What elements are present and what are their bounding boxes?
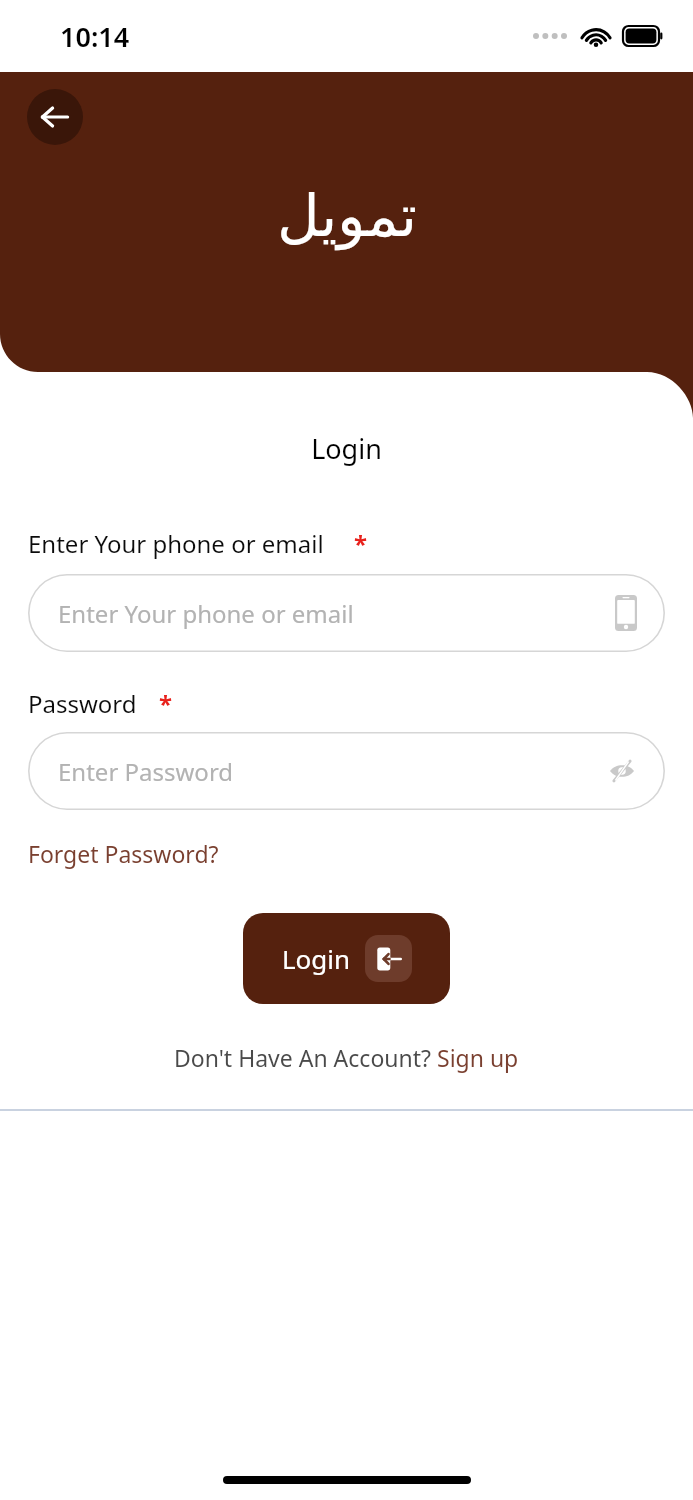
button[interactable]: Enter Password [28,732,665,810]
button[interactable]: Login [243,913,450,1004]
other: Phone [615,595,637,631]
button[interactable]: Don't Have An Account? Sign up [168,1036,525,1079]
staticText: تمویل [277,182,417,250]
staticText: Forget Password? [28,838,219,869]
other: Show password [607,756,637,786]
button[interactable]: Forget Password? [28,834,219,873]
staticText: Enter Your phone or email [28,527,324,560]
button[interactable]: Back [27,89,83,145]
staticText: * [354,527,368,560]
staticText: Login [0,430,693,467]
staticText: 10:14 [60,18,130,55]
staticText: Login [282,941,351,976]
staticText: Enter Password [58,755,607,788]
staticText: Password [28,687,137,720]
staticText: Don't Have An Account? Sign up [174,1042,519,1073]
button[interactable]: Enter Your phone or email [28,574,665,652]
staticText: * [159,687,173,720]
staticText: Enter Your phone or email [58,597,615,630]
